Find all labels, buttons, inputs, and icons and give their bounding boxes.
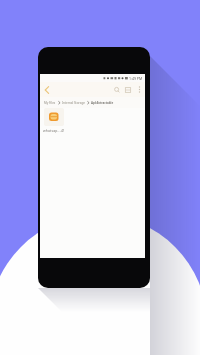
button[interactable] xyxy=(111,82,122,97)
button[interactable]: Internal Storage xyxy=(62,101,85,105)
staticText: whatsap..-458kb.apk xyxy=(43,128,64,133)
button[interactable]: whatsap..-458kb.apk xyxy=(43,108,64,133)
staticText: ApkExtractable xyxy=(91,101,114,105)
staticText: 1:49 PM xyxy=(129,76,143,81)
button[interactable] xyxy=(122,82,133,97)
button[interactable]: My Files xyxy=(44,101,56,105)
staticText: Internal Storage xyxy=(62,101,85,105)
button[interactable]: ApkExtractable xyxy=(91,101,114,105)
button[interactable] xyxy=(40,82,54,97)
staticText: My Files xyxy=(44,101,56,105)
button[interactable] xyxy=(133,82,145,97)
